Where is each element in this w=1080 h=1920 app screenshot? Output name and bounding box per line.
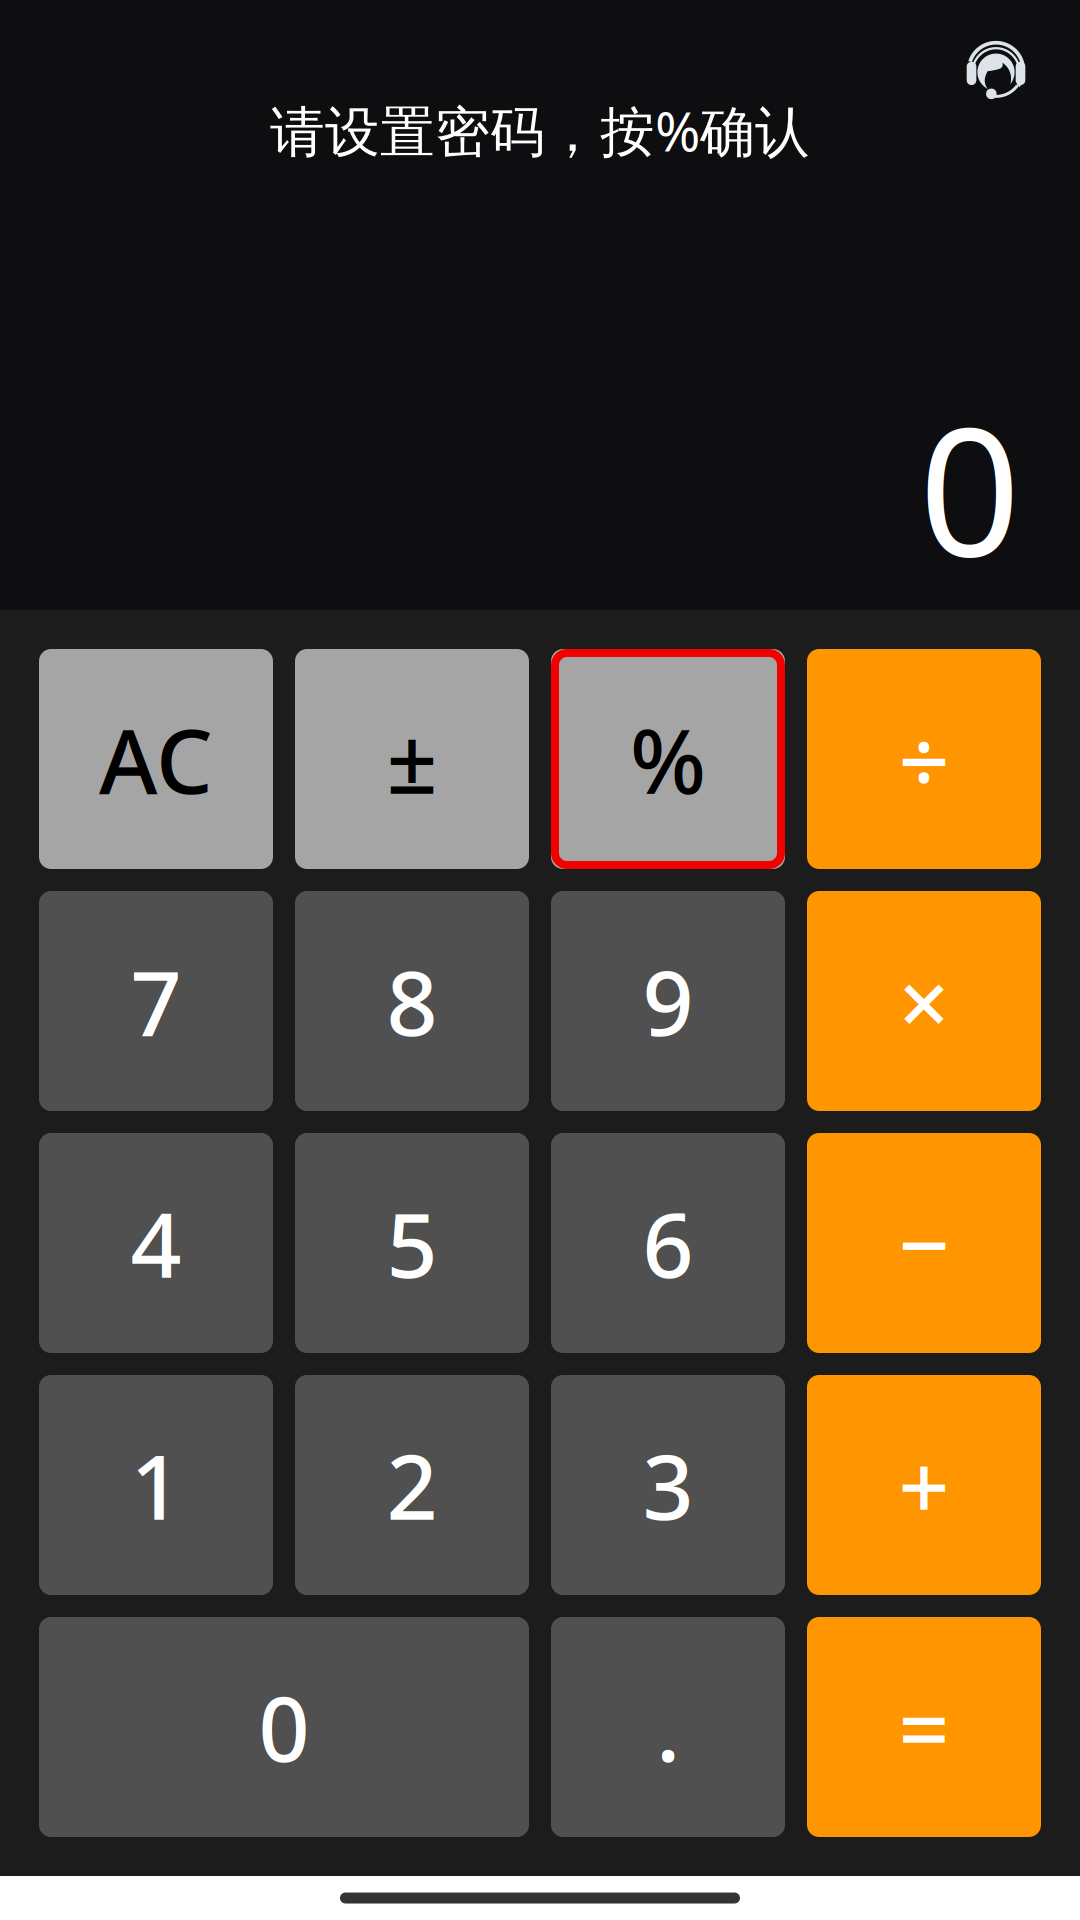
staticText: 8 <box>386 942 437 1060</box>
staticText: 0 <box>258 1668 309 1786</box>
button[interactable]: 6 <box>551 1133 785 1353</box>
button[interactable]: = <box>807 1617 1041 1837</box>
button[interactable]: 9 <box>551 891 785 1111</box>
button[interactable]: Customer support <box>948 22 1044 118</box>
button[interactable]: − <box>807 1133 1041 1353</box>
button[interactable]: 4 <box>39 1133 273 1353</box>
button[interactable]: . <box>551 1617 785 1837</box>
button[interactable]: × <box>807 891 1041 1111</box>
staticText: 2 <box>386 1426 437 1544</box>
staticText: 5 <box>386 1184 437 1302</box>
staticText: 3 <box>642 1426 693 1544</box>
button[interactable]: 0 <box>39 1617 529 1837</box>
button[interactable]: 7 <box>39 891 273 1111</box>
button[interactable]: 8 <box>295 891 529 1111</box>
button[interactable]: AC <box>39 649 273 869</box>
staticText: . <box>656 1668 680 1786</box>
button[interactable]: 2 <box>295 1375 529 1595</box>
staticText: 7 <box>130 942 181 1060</box>
staticText: AC <box>99 700 213 818</box>
button[interactable]: 1 <box>39 1375 273 1595</box>
button[interactable]: 5 <box>295 1133 529 1353</box>
staticText: + <box>898 1426 949 1544</box>
button[interactable]: ÷ <box>807 649 1041 869</box>
button[interactable]: % <box>551 649 785 869</box>
staticText: ± <box>386 700 437 818</box>
staticText: 0 <box>919 369 1020 605</box>
staticText: 6 <box>642 1184 693 1302</box>
staticText: 1 <box>130 1426 181 1544</box>
staticText: % <box>630 700 706 818</box>
staticText: ÷ <box>898 700 949 818</box>
staticText: 9 <box>642 942 693 1060</box>
staticText: × <box>898 942 949 1060</box>
button[interactable]: + <box>807 1375 1041 1595</box>
staticText: 4 <box>130 1184 181 1302</box>
button[interactable]: ± <box>295 649 529 869</box>
button[interactable]: 3 <box>551 1375 785 1595</box>
staticText: − <box>898 1184 949 1302</box>
staticText: 请设置密码，按%确认 <box>270 94 810 167</box>
staticText: = <box>898 1668 949 1786</box>
